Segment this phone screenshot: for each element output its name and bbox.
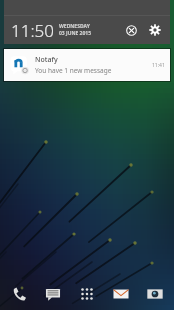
staticText: WEDNESDAY	[59, 23, 90, 30]
button[interactable]: Clear all notifications	[121, 20, 141, 40]
staticText: You have 1 new message	[35, 66, 112, 75]
staticText: 11:41	[152, 62, 165, 69]
button[interactable]: Apps	[70, 278, 104, 310]
button[interactable]: Notafy	[4, 49, 170, 81]
staticText: 03 JUNE 2015	[59, 30, 92, 37]
button[interactable]: Phone	[2, 278, 36, 310]
staticText: 11:50	[11, 19, 54, 42]
button[interactable]: Email	[104, 278, 138, 310]
button[interactable]: Messages	[36, 278, 70, 310]
button[interactable]: Camera	[138, 278, 172, 310]
button[interactable]: Settings	[145, 20, 165, 40]
staticText: Notafy	[35, 55, 58, 65]
